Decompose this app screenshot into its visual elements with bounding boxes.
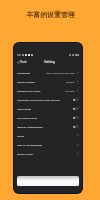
button[interactable]: Night Mode [14, 104, 82, 113]
button[interactable]: Toggle [73, 98, 79, 101]
staticText: Horizontal screen full screen browse [17, 98, 60, 101]
staticText: Full Screen Mode [17, 116, 38, 119]
staticText: How to use/Feedback [17, 143, 43, 146]
staticText: Gesture configuration [17, 125, 43, 128]
button[interactable]: About [14, 131, 82, 140]
staticText: Google [66, 80, 75, 83]
button[interactable]: Full Screen Mode [14, 113, 82, 122]
staticText: Browser User Agent [17, 89, 41, 92]
button[interactable]: Toggle [73, 125, 79, 128]
staticText: Search Engines [17, 80, 35, 83]
button[interactable]: Horizontal screen full screen browse [14, 95, 82, 104]
staticText: 丰富的设置管理 [26, 10, 75, 19]
staticText: Android [65, 89, 75, 92]
button[interactable]: Gesture configuration [14, 122, 82, 131]
button[interactable]: Privacy Policy [14, 149, 82, 158]
button[interactable]: How to use/Feedback [14, 140, 82, 149]
button[interactable]: Search Engines [14, 77, 82, 86]
staticText: Homepage [17, 71, 31, 74]
button[interactable]: Browser User Agent [14, 86, 82, 95]
staticText: Night Mode [17, 107, 31, 110]
staticText: About [17, 134, 25, 137]
button[interactable]: Toggle [73, 107, 79, 110]
button[interactable]: Back [17, 60, 27, 64]
button[interactable]: Toggle [73, 116, 79, 119]
button[interactable]: Homepage [14, 68, 82, 77]
staticText: Back [20, 60, 27, 64]
staticText: Privacy Policy [17, 152, 33, 155]
staticText: https://www.google.com [46, 71, 75, 74]
staticText: Setting [44, 60, 55, 64]
